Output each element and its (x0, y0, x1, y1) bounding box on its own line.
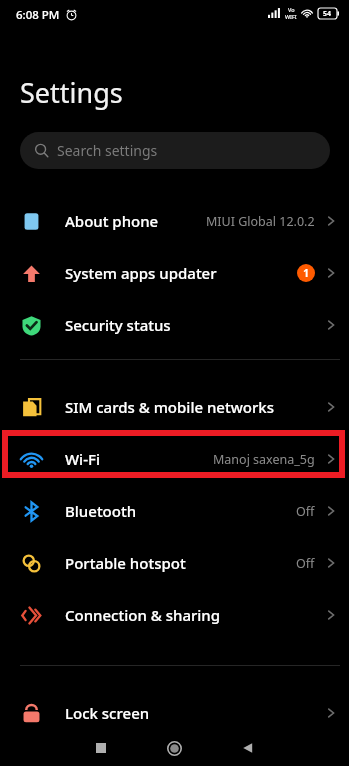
staticText: Search settings (57, 141, 158, 160)
button[interactable]: Wi-Fi (0, 433, 349, 485)
button[interactable]: Back (240, 740, 256, 756)
button[interactable]: Connection & sharing (0, 589, 349, 641)
staticText: Off (296, 503, 315, 520)
button[interactable]: Lock screen (0, 687, 349, 739)
staticText: System apps updater (65, 263, 217, 283)
button[interactable]: Bluetooth (0, 485, 349, 537)
staticText: Connection & sharing (65, 605, 221, 625)
staticText: Portable hotspot (65, 553, 186, 573)
staticText: 54 (323, 9, 332, 19)
staticText: Security status (65, 315, 171, 335)
button[interactable]: About phone (0, 195, 349, 247)
staticText: Wi-Fi (65, 449, 100, 469)
staticText: SIM cards & mobile networks (65, 397, 274, 417)
staticText: Vo (288, 6, 295, 13)
staticText: MIUI Global 12.0.2 (206, 213, 315, 230)
button[interactable]: Search settings (20, 132, 330, 169)
staticText: 1 (303, 266, 309, 280)
staticText: Bluetooth (65, 501, 137, 521)
button[interactable]: SIM cards & mobile networks (0, 381, 349, 433)
staticText: 6:08 PM (16, 7, 60, 23)
button[interactable]: Recent apps (93, 740, 109, 756)
staticText: Manoj saxena_5g (213, 451, 315, 468)
button[interactable]: Security status (0, 299, 349, 351)
button[interactable]: Portable hotspot (0, 537, 349, 589)
staticText: Settings (20, 74, 123, 111)
staticText: WIFI (285, 13, 297, 20)
staticText: Off (296, 555, 315, 572)
button[interactable]: System apps updater (0, 247, 349, 299)
staticText: Lock screen (65, 703, 150, 723)
staticText: About phone (65, 211, 159, 231)
button[interactable]: Home (166, 740, 182, 756)
